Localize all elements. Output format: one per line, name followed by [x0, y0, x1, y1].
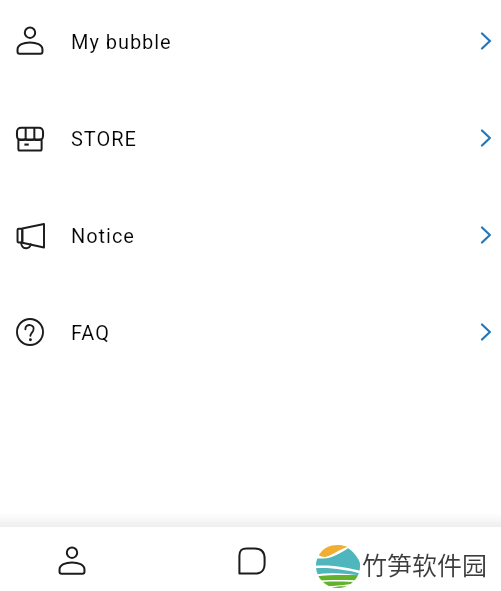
button[interactable]: FAQ	[0, 283, 501, 380]
staticText: FAQ	[71, 321, 110, 344]
button[interactable]: Notice	[0, 186, 501, 283]
staticText: 竹笋软件园	[362, 546, 488, 582]
button[interactable]: My bubble	[0, 0, 501, 89]
button[interactable]: STORE	[0, 89, 501, 186]
button[interactable]: Chat	[180, 527, 324, 591]
staticText: Notice	[71, 224, 135, 247]
staticText: My bubble	[71, 30, 172, 53]
button[interactable]: Profile	[0, 527, 144, 591]
staticText: STORE	[71, 127, 137, 150]
